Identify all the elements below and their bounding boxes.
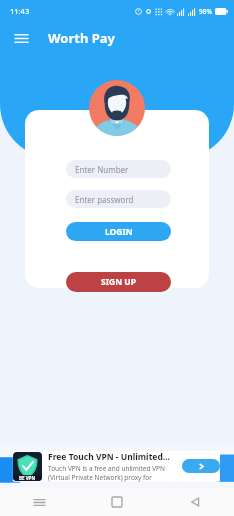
button[interactable]: Open navigation menu	[8, 25, 34, 51]
staticText: SIGN UP	[101, 276, 136, 288]
staticText: Enter Number	[75, 164, 129, 175]
staticText: (Virtual Private Network) proxy for Andr…	[48, 473, 179, 482]
staticText: Touch VPN is a free and unlimited VPN	[48, 464, 165, 473]
button[interactable]: Recent apps	[0, 488, 78, 516]
button[interactable]: Back	[156, 488, 234, 516]
staticText: Free Touch VPN - Unlimited...	[48, 451, 170, 463]
button[interactable]: Free Touch VPN app icon	[13, 452, 42, 481]
staticText: Enter password	[75, 194, 134, 205]
staticText: 98%	[199, 7, 212, 16]
button[interactable]: Enter password	[66, 190, 171, 208]
button[interactable]: Install	[182, 459, 220, 473]
staticText: LOGIN	[105, 226, 133, 238]
staticText: Worth Pay	[48, 29, 116, 47]
button[interactable]: Home	[78, 488, 156, 516]
button[interactable]: LOGIN	[66, 222, 171, 241]
button[interactable]: SIGN UP	[66, 272, 171, 292]
button[interactable]: Enter Number	[66, 160, 171, 178]
staticText: 11:43	[10, 6, 30, 16]
staticText: BE VPN	[19, 475, 36, 481]
